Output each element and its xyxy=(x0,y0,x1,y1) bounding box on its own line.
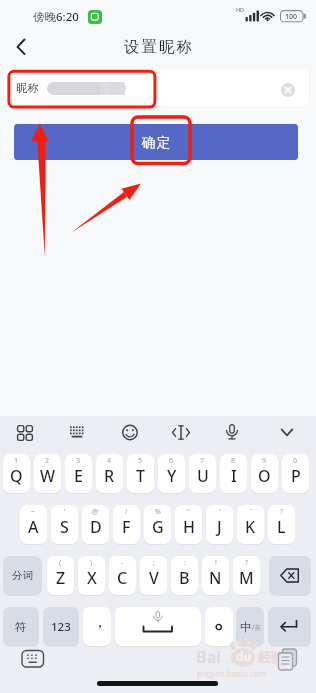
button[interactable]: ) xyxy=(78,556,105,595)
staticText: 100 xyxy=(285,12,298,22)
button[interactable]: ! xyxy=(202,556,229,595)
button[interactable]: 4 xyxy=(96,454,123,493)
staticText: 经验 xyxy=(258,649,284,665)
button[interactable] xyxy=(115,607,201,646)
staticText: @ xyxy=(92,507,99,517)
button[interactable] xyxy=(274,420,300,448)
button[interactable]: - xyxy=(109,556,136,595)
button[interactable] xyxy=(281,83,295,97)
staticText: Z xyxy=(56,567,66,589)
staticText: W xyxy=(40,465,56,487)
staticText: ? xyxy=(280,507,284,517)
staticText: Y xyxy=(167,465,177,487)
staticText: 3 xyxy=(76,456,81,466)
button[interactable]: " xyxy=(175,505,202,544)
staticText: 4 xyxy=(107,456,112,466)
staticText: HD xyxy=(236,6,245,13)
button[interactable] xyxy=(4,69,308,106)
button[interactable]: ` xyxy=(237,505,264,544)
staticText: ` xyxy=(250,507,252,517)
button[interactable]: 1 xyxy=(3,454,30,493)
staticText: 123 xyxy=(51,619,71,635)
staticText: Q xyxy=(10,465,23,487)
staticText: X xyxy=(87,567,97,589)
button[interactable]: ' xyxy=(51,505,78,544)
button[interactable]: ， xyxy=(83,607,111,646)
staticText: 符 xyxy=(15,620,27,634)
button[interactable]: ; xyxy=(140,556,167,595)
staticText: M xyxy=(239,567,254,589)
button[interactable]: 7 xyxy=(189,454,216,493)
button[interactable] xyxy=(8,34,34,60)
staticText: N xyxy=(209,567,222,589)
staticText: % xyxy=(155,507,161,517)
button[interactable]: 6 xyxy=(158,454,185,493)
button[interactable]: ? xyxy=(233,556,260,595)
button[interactable]: % xyxy=(144,505,171,544)
staticText: - xyxy=(121,558,124,568)
staticText: / xyxy=(125,507,128,517)
button[interactable]: 符 xyxy=(3,607,39,646)
button[interactable]: ( xyxy=(47,556,74,595)
staticText: 8 xyxy=(231,456,236,466)
button[interactable] xyxy=(219,420,245,448)
staticText: 设置昵称 xyxy=(123,37,193,57)
staticText: 2 xyxy=(45,456,50,466)
button[interactable]: / xyxy=(113,505,140,544)
staticText: A xyxy=(28,516,39,538)
button[interactable]: 2 xyxy=(34,454,61,493)
button[interactable]: ? xyxy=(268,505,295,544)
staticText: G xyxy=(152,516,164,538)
button[interactable]: 中 xyxy=(236,607,264,646)
button[interactable] xyxy=(205,607,233,646)
button[interactable] xyxy=(12,420,38,448)
staticText: : xyxy=(184,558,186,568)
button[interactable] xyxy=(64,420,90,448)
button[interactable] xyxy=(117,420,143,448)
staticText: ) xyxy=(90,558,93,568)
staticText: ， xyxy=(92,612,108,632)
staticText: 确定 xyxy=(141,134,171,151)
staticText: ( xyxy=(59,558,62,568)
staticText: K xyxy=(245,516,256,538)
staticText: 0 xyxy=(293,456,298,466)
staticText: ' xyxy=(219,507,221,517)
staticText: du xyxy=(236,648,252,664)
button[interactable]: 分词 xyxy=(3,556,42,595)
staticText: L xyxy=(277,516,286,538)
button[interactable] xyxy=(20,648,46,670)
button[interactable] xyxy=(168,420,194,448)
staticText: 9 xyxy=(262,456,267,466)
staticText: 傍晚6:20 xyxy=(33,9,79,25)
staticText: jingyan.baidu.com xyxy=(197,668,267,679)
staticText: ! xyxy=(215,558,217,568)
staticText: ~ xyxy=(31,507,36,517)
button[interactable]: ' xyxy=(206,505,233,544)
staticText: V xyxy=(149,567,159,589)
button[interactable]: 9 xyxy=(251,454,278,493)
button[interactable]: ~ xyxy=(20,505,47,544)
button[interactable]: : xyxy=(171,556,198,595)
staticText: 昵称 xyxy=(16,81,39,95)
button[interactable]: 5 xyxy=(127,454,154,493)
staticText: C xyxy=(117,567,128,589)
button[interactable]: 8 xyxy=(220,454,247,493)
staticText: P xyxy=(291,465,301,487)
button[interactable]: 确定 xyxy=(14,124,298,160)
staticText: J xyxy=(217,516,222,538)
staticText: I xyxy=(231,465,237,487)
button[interactable] xyxy=(269,556,311,595)
button[interactable]: 3 xyxy=(65,454,92,493)
staticText: O xyxy=(258,465,271,487)
staticText: 1 xyxy=(14,456,19,466)
button[interactable]: 123 xyxy=(43,607,79,646)
button[interactable] xyxy=(268,607,311,646)
button[interactable]: 0 xyxy=(282,454,309,493)
staticText: S xyxy=(60,516,69,538)
staticText: R xyxy=(104,465,115,487)
staticText: ' xyxy=(64,507,66,517)
button[interactable]: @ xyxy=(82,505,109,544)
staticText: /英 xyxy=(252,623,261,632)
staticText: 5 xyxy=(138,456,143,466)
staticText: Bai xyxy=(196,646,222,668)
